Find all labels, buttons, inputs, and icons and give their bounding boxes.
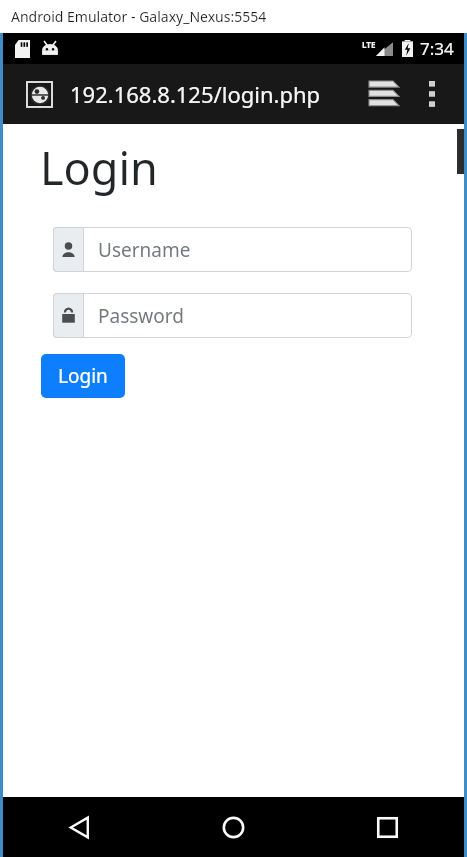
staticText: Password <box>98 303 184 329</box>
staticText: Username <box>98 237 191 263</box>
button[interactable]: Site information <box>26 81 53 108</box>
button[interactable]: Username <box>53 227 412 272</box>
staticText: Login <box>40 137 158 198</box>
staticText: 7:34 <box>420 37 454 60</box>
staticText: Android Emulator - Galaxy_Nexus:5554 <box>11 7 267 26</box>
staticText: 192.168.8.125/login.php <box>70 79 362 109</box>
button[interactable]: Home <box>156 797 310 857</box>
button[interactable]: More options <box>410 72 454 116</box>
button[interactable]: Recent apps <box>310 797 464 857</box>
button[interactable]: Back <box>3 797 156 857</box>
button[interactable]: Login <box>41 354 125 398</box>
staticText: Login <box>58 363 108 389</box>
staticText: LTE <box>362 39 376 50</box>
button[interactable]: Tabs <box>362 72 406 116</box>
button[interactable]: Password <box>53 293 412 338</box>
